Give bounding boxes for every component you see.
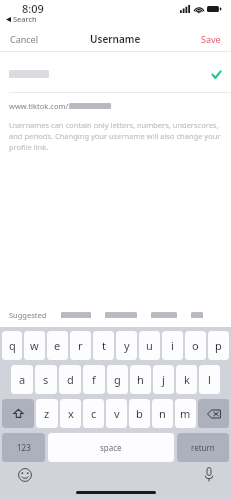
staticText: k [184, 372, 190, 387]
staticText: j [162, 372, 165, 387]
button[interactable]: p [208, 331, 229, 360]
staticText: o [192, 338, 199, 353]
button[interactable]: o [185, 331, 206, 360]
button[interactable]: x [60, 399, 81, 428]
button[interactable]: s [35, 365, 57, 394]
staticText: 8:09 [22, 1, 44, 16]
button[interactable]: f [83, 365, 105, 394]
staticText: g [114, 372, 121, 387]
staticText: r [78, 338, 83, 353]
staticText: x [68, 406, 74, 421]
staticText: a [19, 372, 26, 387]
button[interactable]: m [175, 399, 196, 428]
staticText: c [91, 406, 97, 421]
button[interactable]: Dictation [204, 467, 214, 482]
staticText: q [9, 338, 16, 353]
staticText: e [54, 338, 61, 353]
staticText: Search [13, 14, 37, 24]
button[interactable]: i [162, 331, 183, 360]
button[interactable]: Shift [2, 399, 34, 428]
staticText: l [208, 372, 211, 387]
button[interactable]: t [93, 331, 114, 360]
staticText: u [146, 338, 153, 353]
staticText: v [114, 406, 120, 421]
button[interactable]: w [24, 331, 45, 360]
button[interactable] [57, 307, 95, 323]
staticText: Username [90, 32, 141, 46]
staticText: f [92, 372, 96, 387]
button[interactable]: Cancel [0, 29, 49, 49]
staticText: z [44, 406, 50, 421]
staticText: m [180, 406, 191, 421]
button[interactable]: d [59, 365, 81, 394]
staticText: w [30, 338, 39, 353]
button[interactable]: e [47, 331, 68, 360]
other: Username available [211, 69, 222, 80]
button[interactable]: n [152, 399, 173, 428]
button[interactable]: l [199, 365, 220, 394]
staticText: p [215, 338, 222, 353]
staticText: b [136, 406, 143, 421]
button[interactable]: q [2, 331, 22, 360]
button[interactable]: z [36, 399, 58, 428]
button[interactable]: r [70, 331, 91, 360]
button[interactable]: space [48, 433, 174, 462]
button[interactable]: a [11, 365, 33, 394]
button[interactable]: return [177, 433, 229, 462]
button[interactable]: k [176, 365, 197, 394]
staticText: www.tiktok.com/ [9, 101, 69, 111]
staticText: d [67, 372, 74, 387]
button[interactable]: b [129, 399, 150, 428]
button[interactable]: Save [191, 29, 231, 49]
button[interactable]: y [116, 331, 137, 360]
button[interactable]: g [107, 365, 128, 394]
button[interactable]: v [106, 399, 127, 428]
staticText: Cancel [10, 33, 39, 45]
staticText: Suggested [9, 310, 47, 320]
staticText: return [191, 442, 215, 453]
button[interactable] [187, 307, 207, 323]
staticText: i [171, 338, 174, 353]
button[interactable] [101, 307, 141, 323]
staticText: t [102, 338, 106, 353]
staticText: 123 [17, 442, 31, 453]
staticText: h [137, 372, 144, 387]
button[interactable]: j [153, 365, 174, 394]
staticText: y [124, 338, 130, 353]
staticText: n [159, 406, 166, 421]
button[interactable]: Backspace [198, 399, 229, 428]
staticText: space [100, 442, 122, 453]
button[interactable]: u [139, 331, 160, 360]
button[interactable]: Emoji [18, 468, 32, 482]
staticText: Save [201, 33, 221, 45]
button[interactable]: c [83, 399, 104, 428]
button[interactable] [147, 307, 181, 323]
staticText: Usernames can contain only letters, numb… [9, 120, 222, 152]
button[interactable]: 123 [2, 433, 45, 462]
staticText: s [43, 372, 49, 387]
button[interactable]: Username available [0, 63, 231, 85]
button[interactable]: h [130, 365, 151, 394]
